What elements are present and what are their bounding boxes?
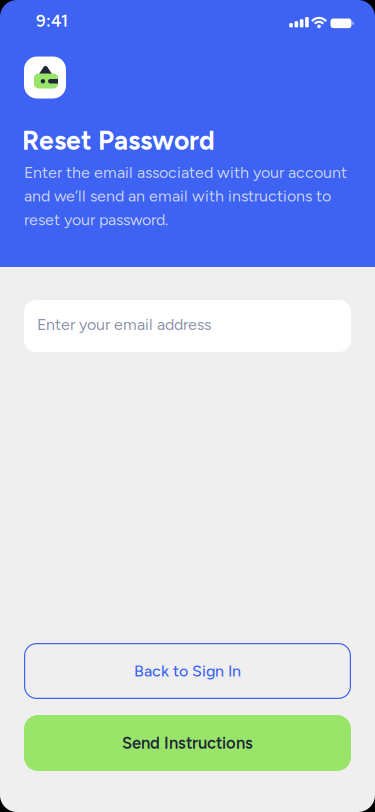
staticText: Reset Password [22,125,215,156]
staticText: 9:41 [36,11,68,31]
staticText: Enter the email associated with your acc… [24,163,347,182]
staticText: reset your password. [24,210,168,229]
staticText: Enter your email address [37,315,211,334]
button[interactable]: Enter your email address [24,300,351,352]
staticText: Send Instructions [122,733,253,753]
button[interactable]: Back to Sign In [24,643,351,699]
staticText: and we’ll send an email with instruction… [24,186,331,206]
staticText: Back to Sign In [134,661,241,681]
button[interactable]: Send Instructions [24,715,351,771]
